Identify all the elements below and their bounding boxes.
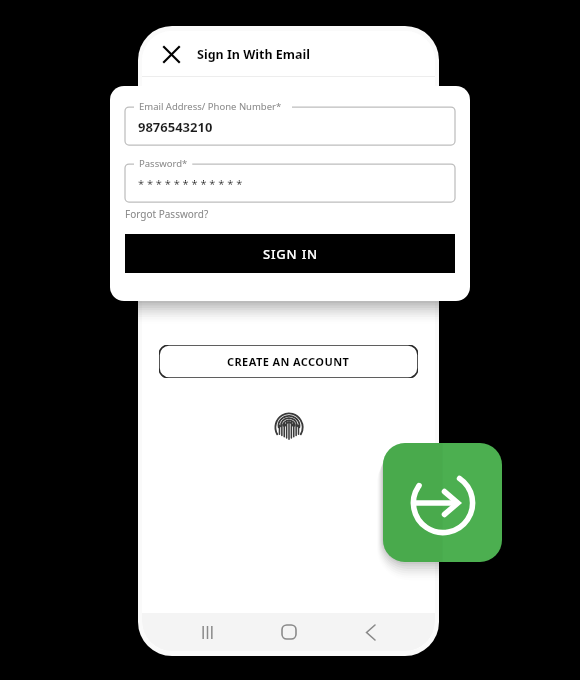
button[interactable]: Forgot Password? <box>125 207 209 221</box>
button[interactable]: Home <box>272 615 306 649</box>
staticText: Password* <box>139 157 188 170</box>
button[interactable]: Fingerprint sign in <box>269 407 309 447</box>
button[interactable]: Back <box>353 615 387 649</box>
staticText: Sign In With Email <box>197 46 310 63</box>
staticText: SIGN IN <box>263 245 318 263</box>
button[interactable]: CREATE AN ACCOUNT <box>159 345 418 378</box>
staticText: CREATE AN ACCOUNT <box>227 354 350 369</box>
button[interactable]: Recent apps <box>190 615 224 649</box>
staticText: 9876543210 <box>138 118 213 136</box>
staticText: Forgot Password? <box>125 207 209 221</box>
button[interactable]: Sign in <box>383 443 502 562</box>
button[interactable]: Close <box>154 37 188 71</box>
staticText: * * * * * * * * * * * * <box>138 176 243 191</box>
button[interactable]: SIGN IN <box>125 234 455 273</box>
staticText: Email Address/ Phone Number* <box>139 100 282 113</box>
